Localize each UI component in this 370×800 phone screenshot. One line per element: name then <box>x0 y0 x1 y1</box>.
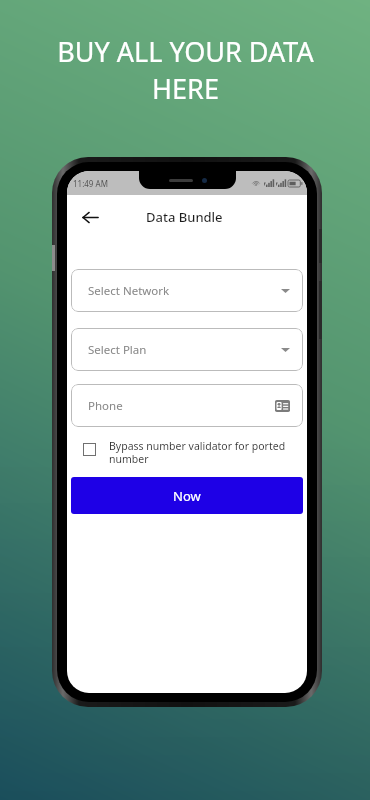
staticText: Select Plan <box>88 342 147 358</box>
staticText: Bypass number validator for ported numbe… <box>109 439 297 466</box>
staticText: Select Network <box>88 283 170 299</box>
button[interactable]: Back <box>75 202 105 232</box>
button[interactable]: Bypass number validator for ported numbe… <box>83 439 297 466</box>
button[interactable]: Select Network <box>71 269 303 312</box>
staticText: HERE <box>152 70 219 107</box>
staticText: Data Bundle <box>146 208 223 226</box>
staticText: 11:49 AM <box>73 178 108 189</box>
staticText: BUY ALL YOUR DATA <box>57 33 314 70</box>
staticText: Phone <box>88 398 123 414</box>
button[interactable]: Select Plan <box>71 328 303 371</box>
button[interactable]: Now <box>71 477 303 514</box>
staticText: Now <box>173 487 201 505</box>
button[interactable]: Phone <box>71 384 303 427</box>
